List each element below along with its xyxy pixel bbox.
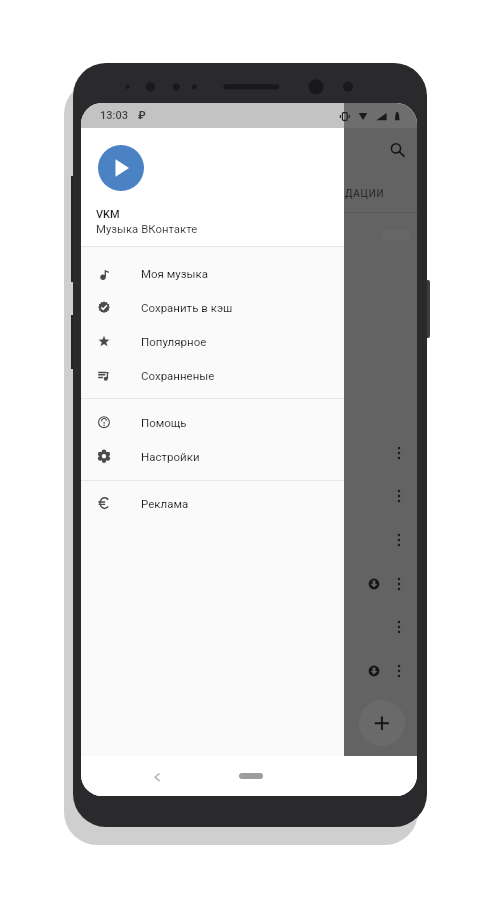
staticText: VKM — [96, 208, 120, 221]
button[interactable]: Search — [381, 134, 415, 168]
button[interactable]: Сохранненые — [81, 358, 344, 392]
button[interactable]: More options — [384, 569, 414, 599]
button[interactable]: Сохранить в кэш — [81, 290, 344, 324]
staticText: Музыка ВКонтакте — [96, 222, 198, 235]
button[interactable]: More options — [384, 438, 414, 468]
button[interactable]: Home — [239, 773, 263, 779]
button[interactable]: Add — [359, 700, 405, 746]
button[interactable]: App logo — [98, 145, 144, 191]
staticText: Реклама — [141, 497, 189, 510]
button[interactable]: More options — [384, 656, 414, 686]
button[interactable]: Back — [144, 764, 170, 790]
staticText: Сохранненые — [141, 369, 215, 382]
button[interactable]: Настройки — [81, 439, 344, 473]
button[interactable]: More options — [384, 481, 414, 511]
staticText: ₽ — [138, 109, 146, 122]
button[interactable]: Помощь — [81, 405, 344, 439]
staticText: Помощь — [141, 416, 187, 429]
staticText: Популярное — [141, 335, 207, 348]
staticText: Настройки — [141, 450, 200, 463]
staticText: ДАЦИИ — [345, 188, 385, 200]
button[interactable]: Моя музыка — [81, 256, 344, 290]
staticText: Моя музыка — [141, 267, 208, 280]
button[interactable]: More options — [384, 525, 414, 555]
staticText: Сохранить в кэш — [141, 301, 233, 314]
button[interactable]: Популярное — [81, 324, 344, 358]
button[interactable]: Реклама — [81, 486, 344, 520]
staticText: 13:03 — [100, 109, 128, 122]
button[interactable]: More options — [384, 612, 414, 642]
